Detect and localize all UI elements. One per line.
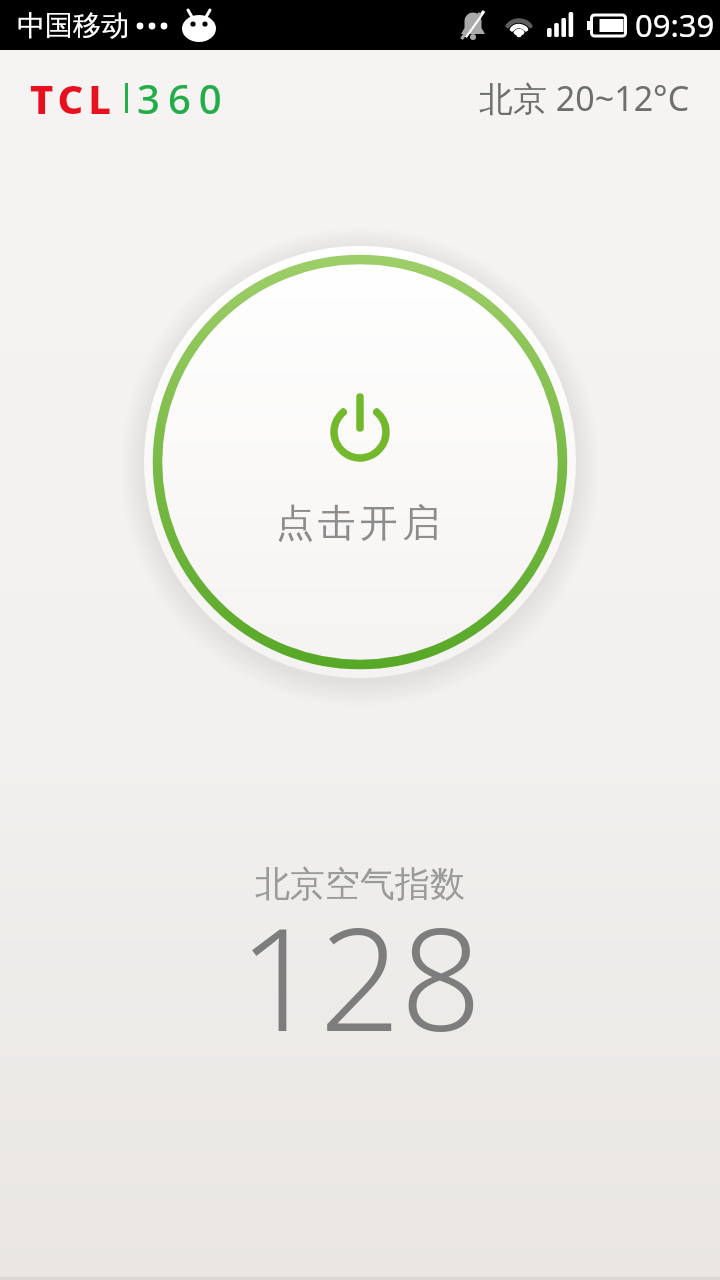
staticText: 北京空气指数 xyxy=(0,862,720,906)
staticText: 点击开启 xyxy=(0,499,720,547)
staticText: 中国移动 xyxy=(17,8,129,43)
button[interactable] xyxy=(144,246,576,678)
staticText: 北京 20~12°C xyxy=(479,75,690,121)
button[interactable]: TCL xyxy=(30,71,230,125)
staticText: TCL xyxy=(30,71,117,125)
staticText: 128 xyxy=(0,879,720,1072)
staticText: 09:39 xyxy=(635,4,715,46)
staticText: 360 xyxy=(137,71,230,125)
